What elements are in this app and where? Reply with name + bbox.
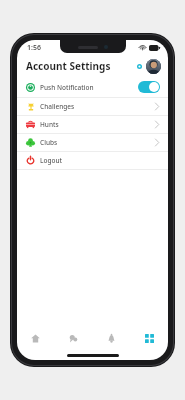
- staticText: Clubs: [40, 138, 58, 147]
- staticText: Push Notification: [40, 83, 94, 92]
- staticText: Account Settings: [26, 59, 111, 73]
- button[interactable]: Alerts: [92, 326, 130, 350]
- button[interactable]: Logout: [17, 152, 168, 169]
- staticText: Hunts: [40, 120, 59, 129]
- button[interactable]: Clubs: [17, 134, 168, 151]
- staticText: Logout: [40, 156, 63, 165]
- button[interactable]: Hunts: [17, 116, 168, 133]
- button[interactable]: Push Notification toggle: [138, 81, 160, 93]
- button[interactable]: Messages: [54, 326, 92, 350]
- button[interactable]: Notifications: [133, 60, 145, 72]
- button[interactable]: Push Notification: [17, 77, 168, 97]
- staticText: 1:56: [27, 43, 41, 53]
- button[interactable]: Challenges: [17, 98, 168, 115]
- button[interactable]: Dashboard: [130, 326, 168, 350]
- staticText: Challenges: [40, 102, 75, 111]
- button[interactable]: Profile: [146, 59, 161, 74]
- button[interactable]: Home: [17, 326, 54, 350]
